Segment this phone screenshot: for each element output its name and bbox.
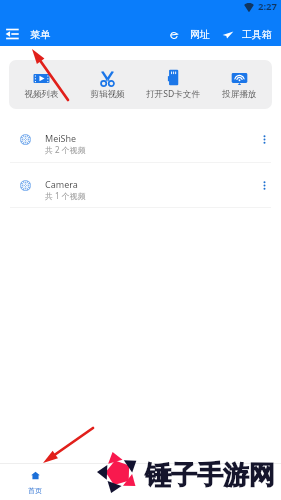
button[interactable]: 打开SD卡文件 <box>140 63 206 106</box>
staticText: 菜单 <box>30 28 50 41</box>
button[interactable]: 网址 <box>166 25 213 44</box>
button[interactable]: More options <box>255 130 273 148</box>
button[interactable]: 首页 <box>21 469 49 497</box>
staticText: 投屏播放 <box>222 89 257 100</box>
staticText: 工具箱 <box>242 28 272 41</box>
staticText: 共 2 个视频 <box>45 144 86 155</box>
button[interactable]: 工具箱 <box>219 25 275 44</box>
staticText: 锤子手游网 <box>145 459 275 492</box>
button[interactable]: 投屏播放 <box>206 64 272 106</box>
staticText: 首页 <box>28 486 42 495</box>
button[interactable]: MeiShe <box>0 116 281 162</box>
staticText: 网址 <box>190 28 210 41</box>
staticText: 视频列表 <box>24 89 59 100</box>
button[interactable]: 视频列表 <box>9 64 74 106</box>
staticText: Camera <box>45 178 78 190</box>
staticText: 2:27 <box>258 0 277 13</box>
button[interactable]: 剪辑视频 <box>74 64 140 106</box>
staticText: 剪辑视频 <box>90 89 125 100</box>
button[interactable]: More options <box>255 176 273 194</box>
button[interactable]: Camera <box>0 163 281 207</box>
button[interactable]: Menu <box>2 24 22 44</box>
staticText: MeiShe <box>45 132 77 144</box>
staticText: 共 1 个视频 <box>45 190 86 201</box>
staticText: 打开SD卡文件 <box>146 88 200 100</box>
